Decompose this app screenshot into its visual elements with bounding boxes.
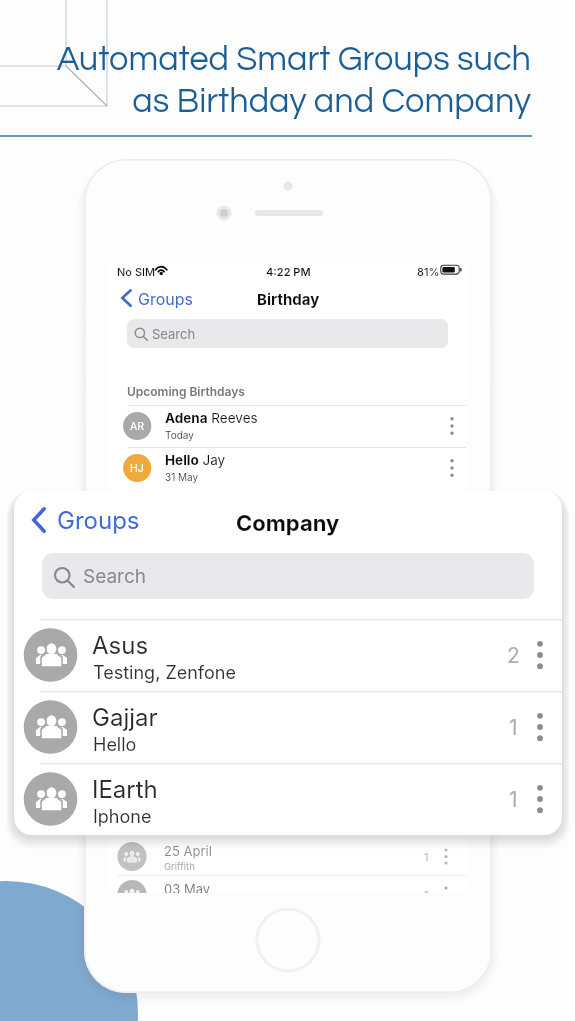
staticText: Griffith (164, 861, 195, 872)
staticText: Upcoming Birthdays (127, 384, 245, 399)
staticText: 1 (509, 787, 518, 812)
staticText: Adena Reeves (165, 410, 258, 426)
button[interactable]: Search (42, 553, 534, 599)
staticText: 31 May (165, 471, 199, 483)
staticText: Hello Jay (165, 452, 226, 468)
button[interactable]: More options (526, 691, 554, 763)
button[interactable]: More options (444, 447, 460, 489)
button[interactable]: Asus (14, 619, 562, 691)
staticText: Hello (93, 734, 137, 756)
staticText: IEarth (92, 775, 158, 804)
button[interactable]: IEarth (14, 763, 562, 835)
button[interactable]: More options (526, 763, 554, 835)
staticText: 2 (507, 643, 520, 668)
staticText: 1 (424, 888, 429, 893)
staticText: Today (165, 429, 194, 441)
staticText: Asus (92, 631, 149, 660)
staticText: 1 (424, 850, 429, 863)
staticText: 1 (509, 715, 518, 740)
button[interactable]: Groups (14, 499, 152, 541)
button[interactable]: More options (526, 619, 554, 691)
button[interactable]: AR (110, 405, 466, 447)
button[interactable]: Groups (110, 284, 201, 312)
button[interactable]: Gajjar (14, 691, 562, 763)
staticText: Gajjar (92, 703, 158, 732)
staticText: No SIM (117, 265, 156, 278)
button[interactable]: More options (444, 405, 460, 447)
staticText: Automated Smart Groups such as Birthday … (0, 42, 531, 120)
staticText: Groups (57, 506, 140, 535)
staticText: Search (83, 565, 147, 588)
staticText: Search (152, 326, 196, 342)
staticText: AR (130, 420, 145, 433)
staticText: Groups (138, 289, 193, 308)
staticText: HJ (130, 462, 144, 475)
button[interactable]: Search (127, 319, 448, 348)
staticText: Iphone (93, 806, 152, 828)
staticText: Birthday (257, 290, 320, 308)
staticText: 25 April (164, 843, 212, 859)
staticText: 4:22 PM (266, 265, 311, 278)
staticText: 03 May (164, 881, 211, 893)
button[interactable]: HJ (110, 447, 466, 489)
staticText: Company (236, 510, 340, 537)
staticText: Testing, Zenfone (93, 662, 236, 684)
staticText: 81% (417, 265, 440, 278)
